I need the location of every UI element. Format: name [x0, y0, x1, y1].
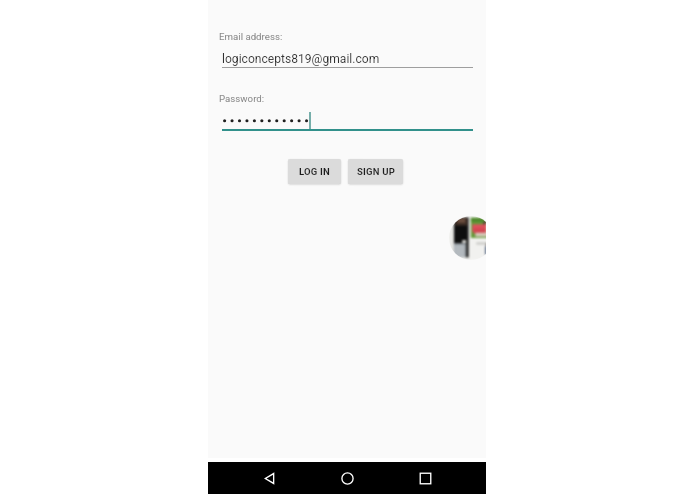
- staticText: Password:: [219, 93, 265, 104]
- staticText: SIGN UP: [357, 166, 395, 177]
- button[interactable]: Home: [331, 462, 363, 494]
- button[interactable]: LOG IN: [288, 159, 341, 184]
- button[interactable]: Back: [253, 462, 285, 494]
- staticText: Email address:: [219, 31, 283, 42]
- button[interactable]: SIGN UP: [348, 159, 403, 184]
- staticText: logiconcepts819@gmail.com: [222, 52, 380, 66]
- button[interactable]: Recents: [409, 462, 441, 494]
- button[interactable]: Profile photo: [449, 216, 486, 260]
- staticText: LOG IN: [299, 166, 330, 177]
